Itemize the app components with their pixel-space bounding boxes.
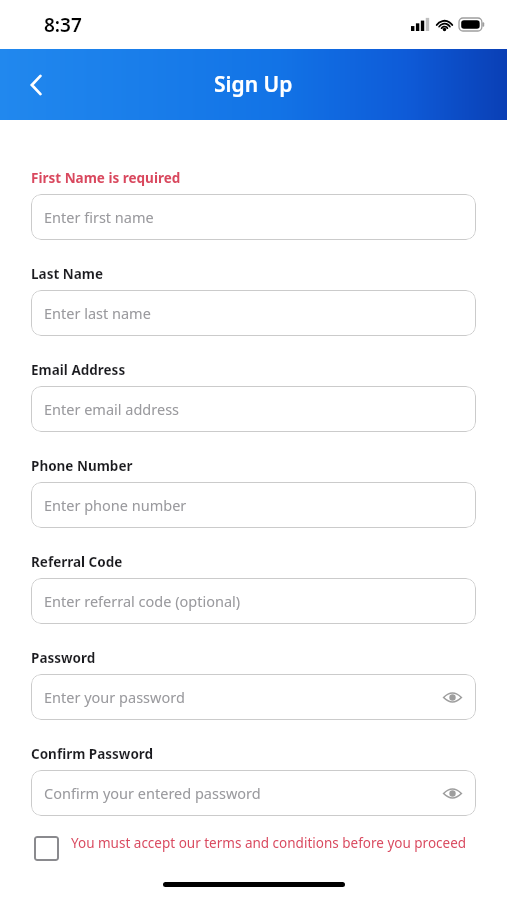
staticText: Confirm Password: [31, 745, 154, 763]
staticText: Last Name: [31, 265, 104, 283]
button[interactable]: Show password: [439, 684, 465, 710]
staticText: Phone Number: [31, 457, 133, 475]
staticText: Confirm your entered password: [44, 783, 261, 803]
button[interactable]: Enter phone number: [31, 482, 476, 528]
staticText: Sign Up: [214, 70, 293, 99]
button[interactable]: Accept terms checkbox: [31, 834, 476, 861]
staticText: 8:37: [44, 12, 82, 38]
staticText: Enter referral code (optional): [44, 591, 241, 611]
staticText: First Name is required: [31, 169, 181, 187]
button[interactable]: Confirm your entered password: [31, 770, 476, 816]
other: Accept terms checkbox: [34, 836, 59, 861]
button[interactable]: Enter referral code (optional): [31, 578, 476, 624]
button[interactable]: Enter email address: [31, 386, 476, 432]
button[interactable]: Enter last name: [31, 290, 476, 336]
button[interactable]: Enter your password: [31, 674, 476, 720]
staticText: Enter last name: [44, 303, 151, 323]
button[interactable]: Enter first name: [31, 194, 476, 240]
staticText: Referral Code: [31, 553, 123, 571]
button[interactable]: Show password: [439, 780, 465, 806]
staticText: Enter email address: [44, 399, 180, 419]
staticText: Email Address: [31, 361, 126, 379]
staticText: You must accept our terms and conditions…: [71, 834, 467, 852]
staticText: Enter phone number: [44, 495, 187, 515]
staticText: Password: [31, 649, 96, 667]
button[interactable]: Back: [14, 63, 58, 107]
staticText: Enter first name: [44, 207, 154, 227]
staticText: Enter your password: [44, 687, 185, 707]
